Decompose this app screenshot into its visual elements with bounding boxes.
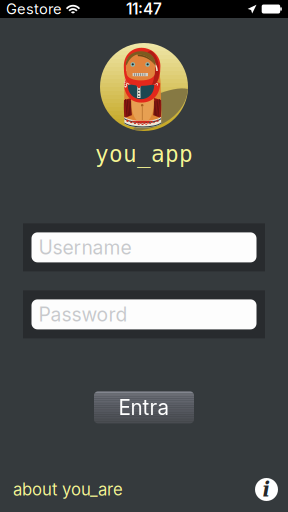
staticText: about you_are [13,479,123,500]
staticText: you_app [95,141,193,167]
button[interactable]: Entra [94,391,194,423]
staticText: Entra [118,395,169,420]
button[interactable]: Info [255,478,278,501]
staticText: Gestore [6,0,62,18]
button[interactable]: about you_are [13,479,123,500]
staticText: 11:47 [126,0,162,18]
staticText: i [262,478,270,501]
button[interactable]: Username [23,223,265,271]
staticText: Password [38,303,127,326]
staticText: Username [38,236,131,259]
button[interactable]: Password [23,290,265,338]
